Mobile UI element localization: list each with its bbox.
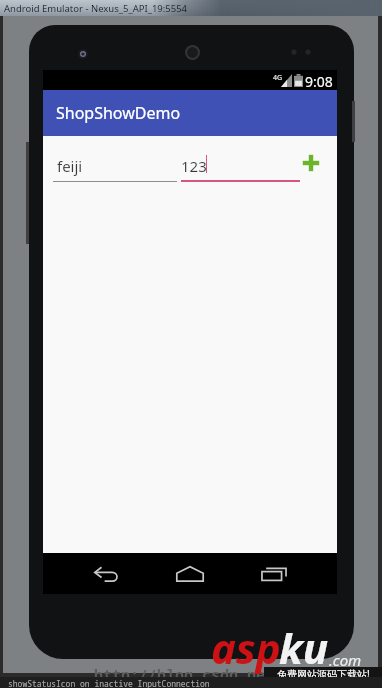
button[interactable]: 123 (181, 152, 300, 182)
button[interactable]: Back (85, 558, 127, 590)
staticText: 123 (181, 156, 207, 176)
staticText: feiji (57, 156, 83, 176)
staticText: .com (329, 650, 362, 670)
staticText: 免费网站源码下载站! (277, 667, 370, 680)
button[interactable]: Recent apps (253, 558, 295, 590)
staticText: ku (279, 619, 329, 676)
button[interactable]: Add (298, 150, 324, 176)
staticText: ShopShowDemo (56, 102, 181, 124)
staticText: 9:08 (305, 72, 333, 91)
staticText: Android Emulator - Nexus_5_API_19:5554 (4, 2, 188, 15)
staticText: showStatusIcon on inactive InputConnecti… (8, 678, 210, 688)
staticText: http://blog.csdn.net (94, 664, 275, 684)
button[interactable]: ShopShowDemo (43, 90, 337, 136)
staticText: asp (211, 619, 281, 676)
button[interactable]: feiji (53, 152, 177, 182)
button[interactable]: Home (169, 558, 211, 590)
staticText: 4G (273, 73, 283, 83)
